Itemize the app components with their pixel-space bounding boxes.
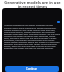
staticText: Artificial intelligence has quietly resh… [4, 24, 60, 50]
staticText: Generative models are in use in recent t… [4, 0, 61, 9]
button[interactable]: Continue [5, 66, 59, 72]
staticText: Continue [26, 67, 38, 71]
button[interactable] [57, 21, 60, 23]
